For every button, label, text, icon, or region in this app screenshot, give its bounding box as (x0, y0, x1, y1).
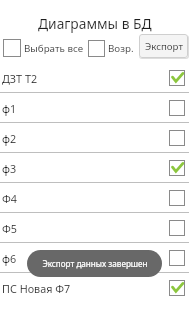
button[interactable]: ПС Новая Ф7 (0, 273, 189, 303)
button[interactable]: Экспорт (139, 34, 188, 58)
button[interactable]: ф6 (0, 243, 189, 273)
button[interactable]: ф3 (0, 153, 189, 183)
staticText: ф6 (2, 251, 169, 266)
staticText: Ф5 (2, 221, 169, 236)
staticText: Экспорт данных завершен (42, 258, 148, 269)
button[interactable]: ДЗТ Т2 (0, 63, 189, 93)
staticText: ПС Новая Ф7 (2, 281, 169, 296)
staticText: Выбрать все (24, 42, 84, 55)
staticText: ф2 (2, 131, 169, 146)
staticText: Экспорт (145, 40, 183, 53)
button[interactable]: Ф5 (0, 213, 189, 243)
staticText: Возр. (108, 42, 134, 55)
button[interactable]: ф1 (0, 93, 189, 123)
button[interactable]: Выбрать все (0, 39, 84, 57)
button[interactable]: ф2 (0, 123, 189, 153)
button[interactable]: Ф4 (0, 183, 189, 213)
staticText: ДЗТ Т2 (2, 71, 169, 86)
button[interactable]: Возр. (88, 40, 134, 57)
staticText: ф3 (2, 161, 169, 176)
staticText: Ф4 (2, 191, 169, 206)
staticText: ф1 (2, 101, 169, 116)
staticText: Диаграммы в БД (38, 14, 152, 33)
